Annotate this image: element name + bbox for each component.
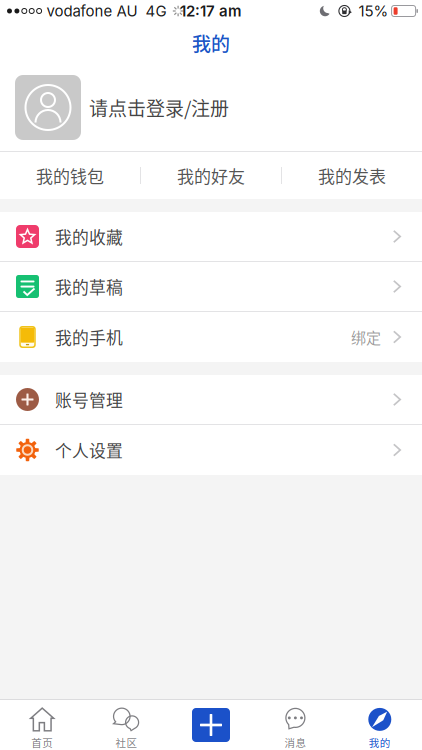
button[interactable]: 我的手机	[0, 312, 422, 362]
button[interactable]: 社区	[84, 700, 169, 750]
staticText: 社区	[116, 735, 138, 750]
button[interactable]: 我的	[338, 700, 422, 750]
button[interactable]: 消息	[253, 700, 338, 750]
staticText: 账号管理	[55, 387, 123, 412]
staticText: 15%	[359, 2, 389, 20]
staticText: 我的收藏	[55, 224, 123, 249]
staticText: 12:17 am	[180, 2, 242, 20]
button[interactable]: 我的好友	[141, 152, 281, 199]
staticText: 我的草稿	[55, 274, 123, 299]
staticText: 我的	[369, 735, 391, 750]
button[interactable]: 我的发表	[282, 152, 422, 199]
staticText: 4G	[146, 2, 167, 20]
staticText: 消息	[284, 735, 306, 750]
button[interactable]: 我的草稿	[0, 262, 422, 312]
staticText: 首页	[31, 735, 53, 750]
button[interactable]: 账号管理	[0, 375, 422, 425]
button[interactable]: 个人设置	[0, 425, 422, 475]
button[interactable]: 我的	[0, 22, 422, 64]
staticText: 个人设置	[55, 438, 123, 462]
button[interactable]: 新建	[169, 700, 253, 750]
staticText: 我的手机	[55, 325, 123, 349]
staticText: 我的	[192, 29, 230, 57]
staticText: 我的发表	[318, 163, 386, 188]
button[interactable]: 请点击登录/注册	[0, 64, 422, 151]
button[interactable]: 首页	[0, 700, 84, 750]
button[interactable]: 我的收藏	[0, 212, 422, 262]
staticText: 我的好友	[177, 163, 245, 188]
staticText: 我的钱包	[36, 163, 104, 188]
staticText: 绑定	[351, 326, 381, 348]
staticText: 请点击登录/注册	[89, 94, 229, 121]
button[interactable]: 我的钱包	[0, 152, 140, 199]
staticText: vodafone AU	[47, 2, 138, 20]
